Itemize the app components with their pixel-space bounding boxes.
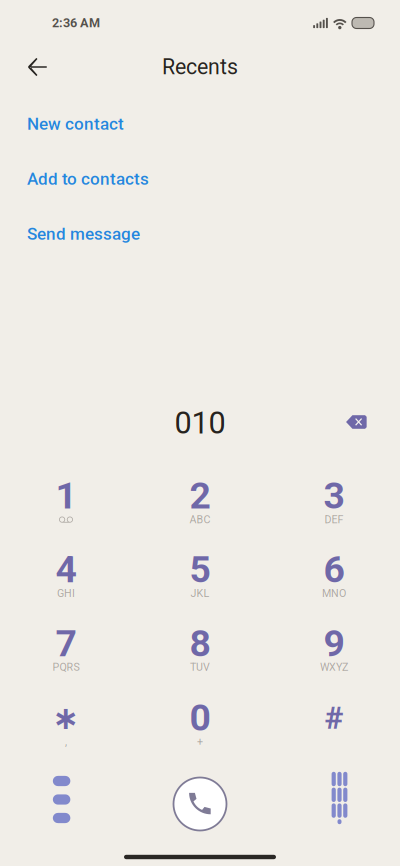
button[interactable]: Call — [158, 771, 242, 837]
staticText: PQRS — [52, 661, 79, 673]
staticText: MNO — [322, 587, 346, 599]
staticText: 2 — [189, 474, 210, 518]
staticText: New contact — [27, 114, 124, 134]
staticText: 5 — [189, 548, 210, 591]
staticText: Recents — [162, 54, 238, 79]
button[interactable]: Delete — [335, 403, 379, 441]
button[interactable]: 5 — [144, 532, 256, 606]
button[interactable]: Dialpad — [297, 766, 381, 830]
staticText: 3 — [323, 474, 344, 518]
button[interactable]: 9 — [278, 606, 390, 680]
staticText: WXYZ — [320, 661, 348, 673]
staticText: # — [324, 699, 343, 736]
button[interactable]: 3 — [278, 459, 390, 533]
staticText: , — [65, 735, 67, 748]
staticText: JKL — [190, 587, 209, 599]
staticText: ∗ — [52, 699, 79, 736]
button[interactable]: 4 — [10, 532, 122, 606]
button[interactable]: New contact — [0, 98, 400, 150]
button[interactable]: # — [278, 681, 390, 755]
button[interactable]: ∗ — [10, 681, 122, 755]
staticText: 4 — [55, 548, 76, 591]
staticText: 2:36 AM — [52, 16, 100, 30]
staticText: TUV — [190, 661, 210, 673]
staticText: 8 — [189, 621, 210, 665]
staticText: 1 — [55, 474, 76, 518]
button[interactable]: 8 — [144, 606, 256, 680]
staticText: 6 — [323, 548, 344, 591]
button[interactable]: Send message — [0, 208, 400, 260]
staticText: + — [197, 735, 203, 748]
button[interactable]: 6 — [278, 532, 390, 606]
staticText: 0 — [189, 696, 210, 740]
button[interactable]: Add to contacts — [0, 153, 400, 205]
button[interactable]: 0 — [144, 681, 256, 755]
staticText: Send message — [27, 224, 140, 244]
staticText: 010 — [174, 405, 225, 441]
staticText: 7 — [55, 621, 76, 665]
staticText: 9 — [323, 621, 344, 665]
button[interactable]: 7 — [10, 606, 122, 680]
staticText: GHI — [57, 587, 75, 599]
staticText: Add to contacts — [27, 169, 149, 189]
button[interactable]: More options — [20, 767, 104, 831]
staticText: ABC — [189, 513, 210, 526]
staticText: DEF — [324, 513, 343, 526]
button[interactable]: 1 — [10, 459, 122, 533]
button[interactable]: 2 — [144, 459, 256, 533]
button[interactable]: Back — [16, 46, 58, 88]
